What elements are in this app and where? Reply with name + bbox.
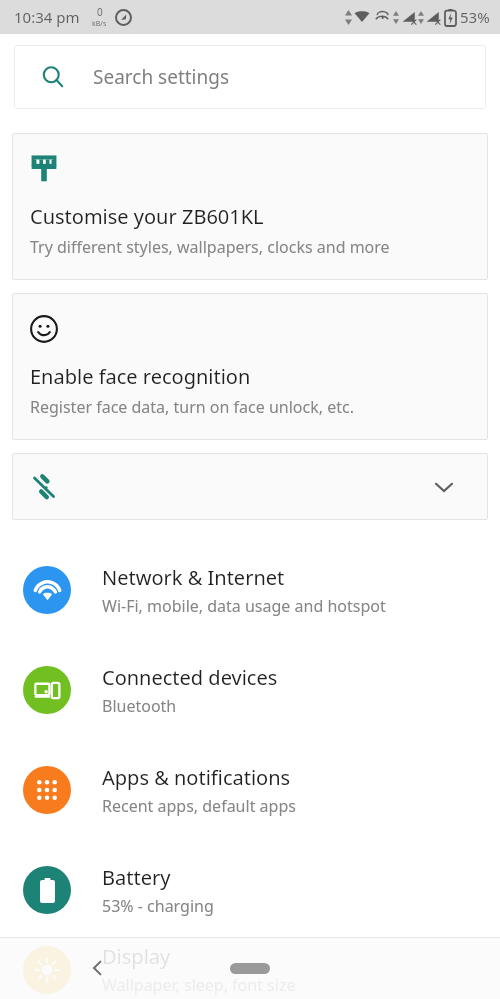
staticText: Register face data, turn on face unlock,… (30, 396, 354, 418)
staticText: kB/s (92, 19, 107, 29)
staticText: Try different styles, wallpapers, clocks… (30, 236, 390, 258)
staticText: Network & Internet (102, 564, 285, 591)
button[interactable]: Search settings (14, 45, 486, 109)
staticText: Wi-Fi, mobile, data usage and hotspot (102, 595, 386, 617)
staticText: Wallpaper, sleep, font size (102, 974, 296, 996)
staticText: 53% - charging (102, 895, 214, 917)
staticText: 0 (97, 5, 103, 19)
button[interactable]: Home (220, 953, 280, 983)
staticText: Display (102, 943, 171, 970)
button[interactable]: Network & Internet (0, 540, 500, 640)
staticText: 10:34 pm (14, 7, 80, 27)
staticText: Bluetooth (102, 695, 177, 717)
staticText: Enable face recognition (30, 363, 251, 390)
button[interactable]: Apps & notifications (0, 740, 500, 840)
button[interactable]: Display (0, 940, 500, 999)
button[interactable]: Connected devices (0, 640, 500, 740)
staticText: Customise your ZB601KL (30, 203, 264, 230)
staticText: Connected devices (102, 664, 278, 691)
button[interactable]: Expand more suggestions (12, 453, 488, 520)
staticText: Search settings (93, 64, 230, 90)
button[interactable]: Battery (0, 840, 500, 940)
staticText: 53% (460, 7, 490, 27)
button[interactable]: Customise your ZB601KL (12, 133, 488, 280)
staticText: Battery (102, 864, 171, 891)
button[interactable]: Back (74, 944, 122, 992)
staticText: Recent apps, default apps (102, 795, 296, 817)
staticText: Apps & notifications (102, 764, 291, 791)
button[interactable]: Enable face recognition (12, 293, 488, 440)
